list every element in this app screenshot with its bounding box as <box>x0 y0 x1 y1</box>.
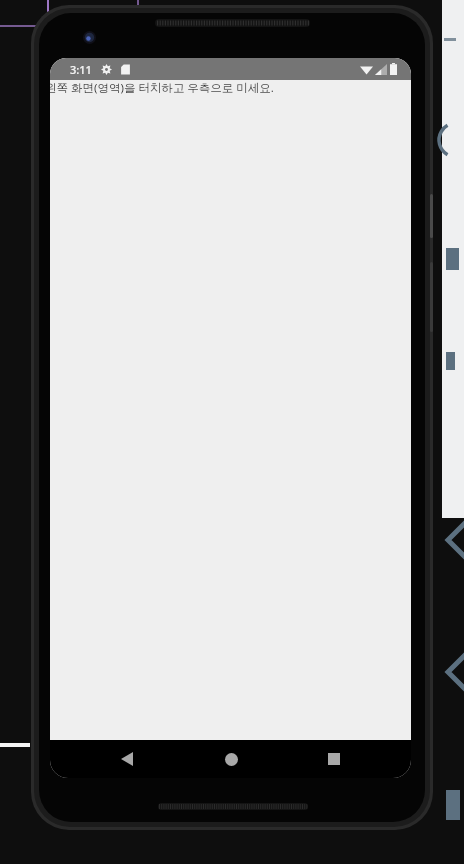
button[interactable]: Home <box>210 740 252 778</box>
button[interactable]: Back <box>106 740 148 778</box>
staticText: 3:11 <box>70 62 92 77</box>
button[interactable]: Recent apps <box>313 740 355 778</box>
staticText: 왼쪽 화면(영역)을 터치하고 우측으로 미세요. <box>50 80 274 96</box>
